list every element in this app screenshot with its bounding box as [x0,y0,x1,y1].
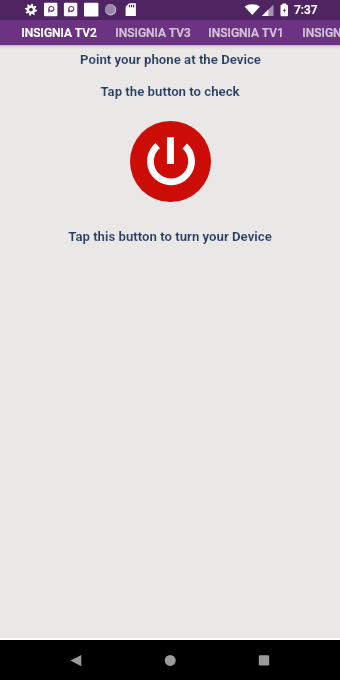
button[interactable]: Power [130,121,211,202]
staticText: INSIGNIA TV2 [21,26,97,40]
staticText: INSIGNIA TV3 [115,26,191,40]
button[interactable]: INSIGNIA TV2 [12,20,106,45]
button[interactable]: INSIGNIA TV4 [293,20,340,45]
staticText: INSIGNIA TV1 [208,26,284,40]
button[interactable]: INSIGNIA TV1 [199,20,293,45]
staticText: Tap this button to turn your Device [68,229,272,244]
staticText: Tap the button to check [100,84,240,99]
staticText: INSIGNIA TV4 [302,26,340,40]
staticText: Point your phone at the Device [80,52,261,67]
button[interactable]: INSIGNIA TV3 [106,20,200,45]
staticText: 7:37 [294,3,318,17]
